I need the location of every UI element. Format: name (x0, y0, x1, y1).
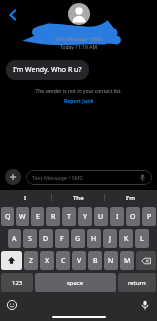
staticText: K (124, 234, 129, 244)
staticText: V (77, 256, 82, 266)
staticText: R (51, 212, 56, 222)
staticText: Today 11:19 AM (60, 44, 97, 51)
button[interactable]: H (87, 229, 101, 248)
button[interactable]: Dictation (138, 298, 152, 312)
staticText: B (93, 256, 98, 266)
staticText: O (130, 212, 136, 222)
button[interactable]: X (40, 251, 54, 270)
button[interactable]: M (120, 251, 134, 270)
staticText: G (75, 234, 81, 244)
staticText: Report Junk (64, 98, 94, 105)
button[interactable]: E (31, 207, 44, 226)
button[interactable]: T (62, 207, 76, 226)
button[interactable]: O (126, 207, 140, 226)
staticText: The (73, 194, 84, 202)
staticText: W (19, 212, 26, 222)
button[interactable]: R (46, 207, 60, 226)
button[interactable]: Contact avatar (68, 3, 90, 25)
staticText: Z (29, 256, 34, 266)
button[interactable]: Add attachment (5, 169, 21, 185)
staticText: space (67, 279, 84, 287)
staticText: J (109, 234, 111, 244)
staticText: H (91, 234, 97, 244)
button[interactable]: V (72, 251, 86, 270)
staticText: The sender is not in your contact list. (35, 88, 122, 95)
button[interactable]: S (23, 229, 37, 248)
button[interactable]: return (118, 273, 156, 292)
button[interactable]: 123 (1, 273, 33, 292)
staticText: A (12, 234, 17, 244)
staticText: L (140, 234, 144, 244)
button[interactable]: I'm Wendy. Who R u? (6, 60, 89, 80)
staticText: C (61, 256, 66, 266)
button[interactable]: F (55, 229, 69, 248)
button[interactable]: I (110, 207, 124, 226)
staticText: I'm Wendy. Who R u? (13, 65, 82, 75)
staticText: F (60, 234, 64, 244)
staticText: M (124, 256, 131, 266)
button[interactable]: I (0, 190, 51, 205)
staticText: return (128, 279, 146, 287)
staticText: I'm (126, 194, 136, 202)
button[interactable]: space (35, 273, 116, 292)
staticText: I (116, 212, 119, 222)
button[interactable]: Z (24, 251, 38, 270)
staticText: Q (5, 212, 11, 222)
button[interactable]: L (135, 229, 149, 248)
staticText: P (147, 212, 152, 222)
button[interactable]: Shift (1, 251, 22, 270)
button[interactable]: D (39, 229, 53, 248)
staticText: D (43, 234, 49, 244)
staticText: Y (83, 212, 87, 222)
button[interactable]: I'm (105, 190, 157, 205)
button[interactable]: K (119, 229, 133, 248)
button[interactable]: B (88, 251, 102, 270)
button[interactable]: A (8, 229, 21, 248)
button[interactable]: Q (1, 207, 14, 226)
staticText: I (24, 194, 27, 202)
button[interactable]: U (94, 207, 108, 226)
staticText: Text Message • SMS (32, 174, 139, 181)
staticText: N (108, 256, 114, 266)
button[interactable]: Backspace (136, 251, 156, 270)
button[interactable]: G (71, 229, 85, 248)
button[interactable]: Text Message • SMS (26, 170, 152, 185)
staticText: 123 (12, 279, 23, 287)
button[interactable]: C (56, 251, 70, 270)
button[interactable]: N (104, 251, 118, 270)
button[interactable]: P (142, 207, 156, 226)
button[interactable]: Report Junk (60, 97, 98, 106)
staticText: S (28, 234, 32, 244)
staticText: U (98, 212, 104, 222)
button[interactable]: Y (78, 207, 92, 226)
button[interactable]: Emoji (5, 298, 19, 312)
button[interactable]: The (52, 190, 104, 205)
staticText: E (36, 212, 40, 222)
staticText: X (45, 256, 50, 266)
staticText: T (67, 212, 71, 222)
button[interactable]: W (16, 207, 29, 226)
button[interactable]: Back (2, 4, 24, 26)
button[interactable]: J (103, 229, 117, 248)
staticText: Text Message • SMS (55, 36, 102, 43)
